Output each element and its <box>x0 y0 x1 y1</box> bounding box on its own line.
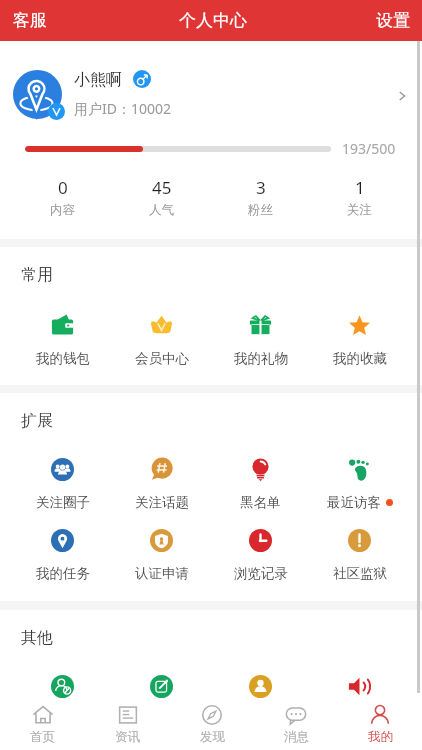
staticText: 浏览记录 <box>234 565 288 582</box>
button[interactable]: 设置 <box>363 1 422 40</box>
staticText: 3 <box>256 176 266 199</box>
button[interactable]: 拉黑名单 <box>13 675 112 699</box>
staticText: 45 <box>152 176 172 199</box>
staticText: 社区监狱 <box>333 565 387 582</box>
button[interactable]: Messages <box>254 699 338 750</box>
staticText: 首页 <box>30 729 55 745</box>
staticText: 常用 <box>21 265 53 285</box>
button[interactable]: 用户协议 <box>211 675 310 699</box>
button[interactable]: Profile <box>338 699 422 750</box>
button[interactable]: 最近访客 <box>310 458 409 511</box>
button[interactable]: News <box>85 699 170 750</box>
staticText: 消息 <box>284 729 309 745</box>
button[interactable]: 社区监狱 <box>310 529 409 582</box>
staticText: 发现 <box>200 729 225 745</box>
button[interactable]: 关注圈子 <box>13 458 112 511</box>
button[interactable]: 0 <box>13 176 112 218</box>
button[interactable]: 我的任务 <box>13 529 112 582</box>
staticText: 扩展 <box>21 411 53 431</box>
button[interactable]: Discover <box>170 699 254 750</box>
staticText: 用户ID：10002 <box>74 99 172 118</box>
button[interactable]: 小熊啊 <box>0 70 422 121</box>
staticText: 关注 <box>347 202 372 218</box>
staticText: 认证申请 <box>135 565 189 582</box>
button[interactable]: 1 <box>310 176 409 218</box>
button[interactable]: 意见反馈 <box>112 675 211 699</box>
button[interactable]: 我的收藏 <box>310 314 409 367</box>
staticText: 关注圈子 <box>36 494 90 511</box>
staticText: 我的任务 <box>36 565 90 582</box>
button[interactable]: 客服 <box>0 1 60 40</box>
button[interactable]: 关注话题 <box>112 458 211 511</box>
staticText: 客服 <box>13 10 47 31</box>
staticText: 我的收藏 <box>333 350 387 367</box>
button[interactable]: 我的礼物 <box>211 314 310 367</box>
staticText: 193/500 <box>342 139 396 158</box>
button[interactable]: 会员中心 <box>112 314 211 367</box>
button[interactable]: 关于我们 <box>310 675 409 699</box>
staticText: 关注话题 <box>135 494 189 511</box>
staticText: 黑名单 <box>240 494 281 511</box>
button[interactable]: 3 <box>211 176 310 218</box>
staticText: 人气 <box>149 202 174 218</box>
staticText: 0 <box>58 176 68 199</box>
staticText: 资讯 <box>115 729 140 745</box>
staticText: 1 <box>355 176 365 199</box>
staticText: 粉丝 <box>248 202 273 218</box>
staticText: 其他 <box>21 628 53 648</box>
button[interactable]: Home <box>0 699 85 750</box>
staticText: 最近访客 <box>327 494 381 511</box>
button[interactable]: 黑名单 <box>211 458 310 511</box>
button[interactable]: 45 <box>112 176 211 218</box>
staticText: 内容 <box>50 202 75 218</box>
staticText: 设置 <box>376 10 410 31</box>
other: Profile details <box>394 88 410 104</box>
staticText: 会员中心 <box>135 350 189 367</box>
staticText: 我的礼物 <box>234 350 288 367</box>
button[interactable]: 我的钱包 <box>13 314 112 367</box>
button[interactable]: 浏览记录 <box>211 529 310 582</box>
staticText: 我的 <box>368 729 393 745</box>
staticText: 小熊啊 <box>74 70 122 90</box>
staticText: 我的钱包 <box>36 350 90 367</box>
button[interactable]: 认证申请 <box>112 529 211 582</box>
staticText: 个人中心 <box>179 10 247 31</box>
